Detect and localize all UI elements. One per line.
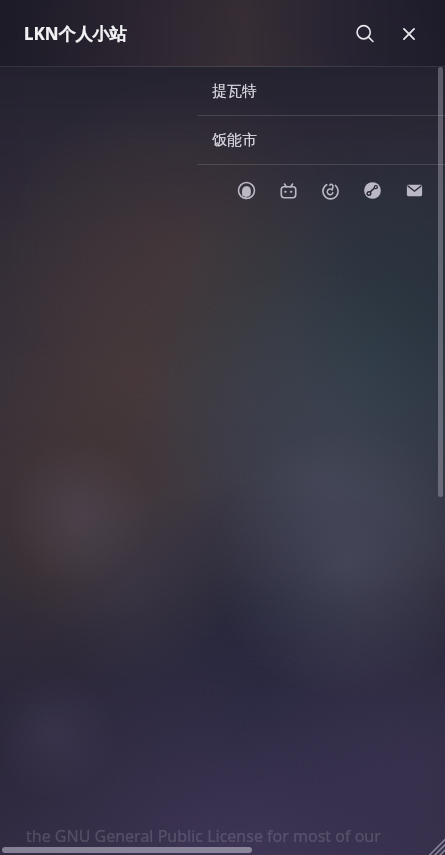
button[interactable]: NetEase Music bbox=[315, 175, 345, 205]
button[interactable]: Close bbox=[387, 12, 431, 56]
staticText: LKN个人小站 bbox=[24, 22, 127, 45]
button[interactable]: Email bbox=[399, 175, 429, 205]
button[interactable]: Steam bbox=[357, 175, 387, 205]
staticText: the GNU General Public License for most … bbox=[26, 825, 381, 847]
staticText: 饭能市 bbox=[212, 131, 257, 150]
staticText: 提瓦特 bbox=[212, 82, 257, 101]
button[interactable]: 饭能市 bbox=[0, 116, 445, 164]
button[interactable]: GitHub bbox=[231, 175, 261, 205]
button[interactable]: Search bbox=[343, 12, 387, 56]
button[interactable]: Bilibili bbox=[273, 175, 303, 205]
button[interactable]: 提瓦特 bbox=[0, 67, 445, 115]
